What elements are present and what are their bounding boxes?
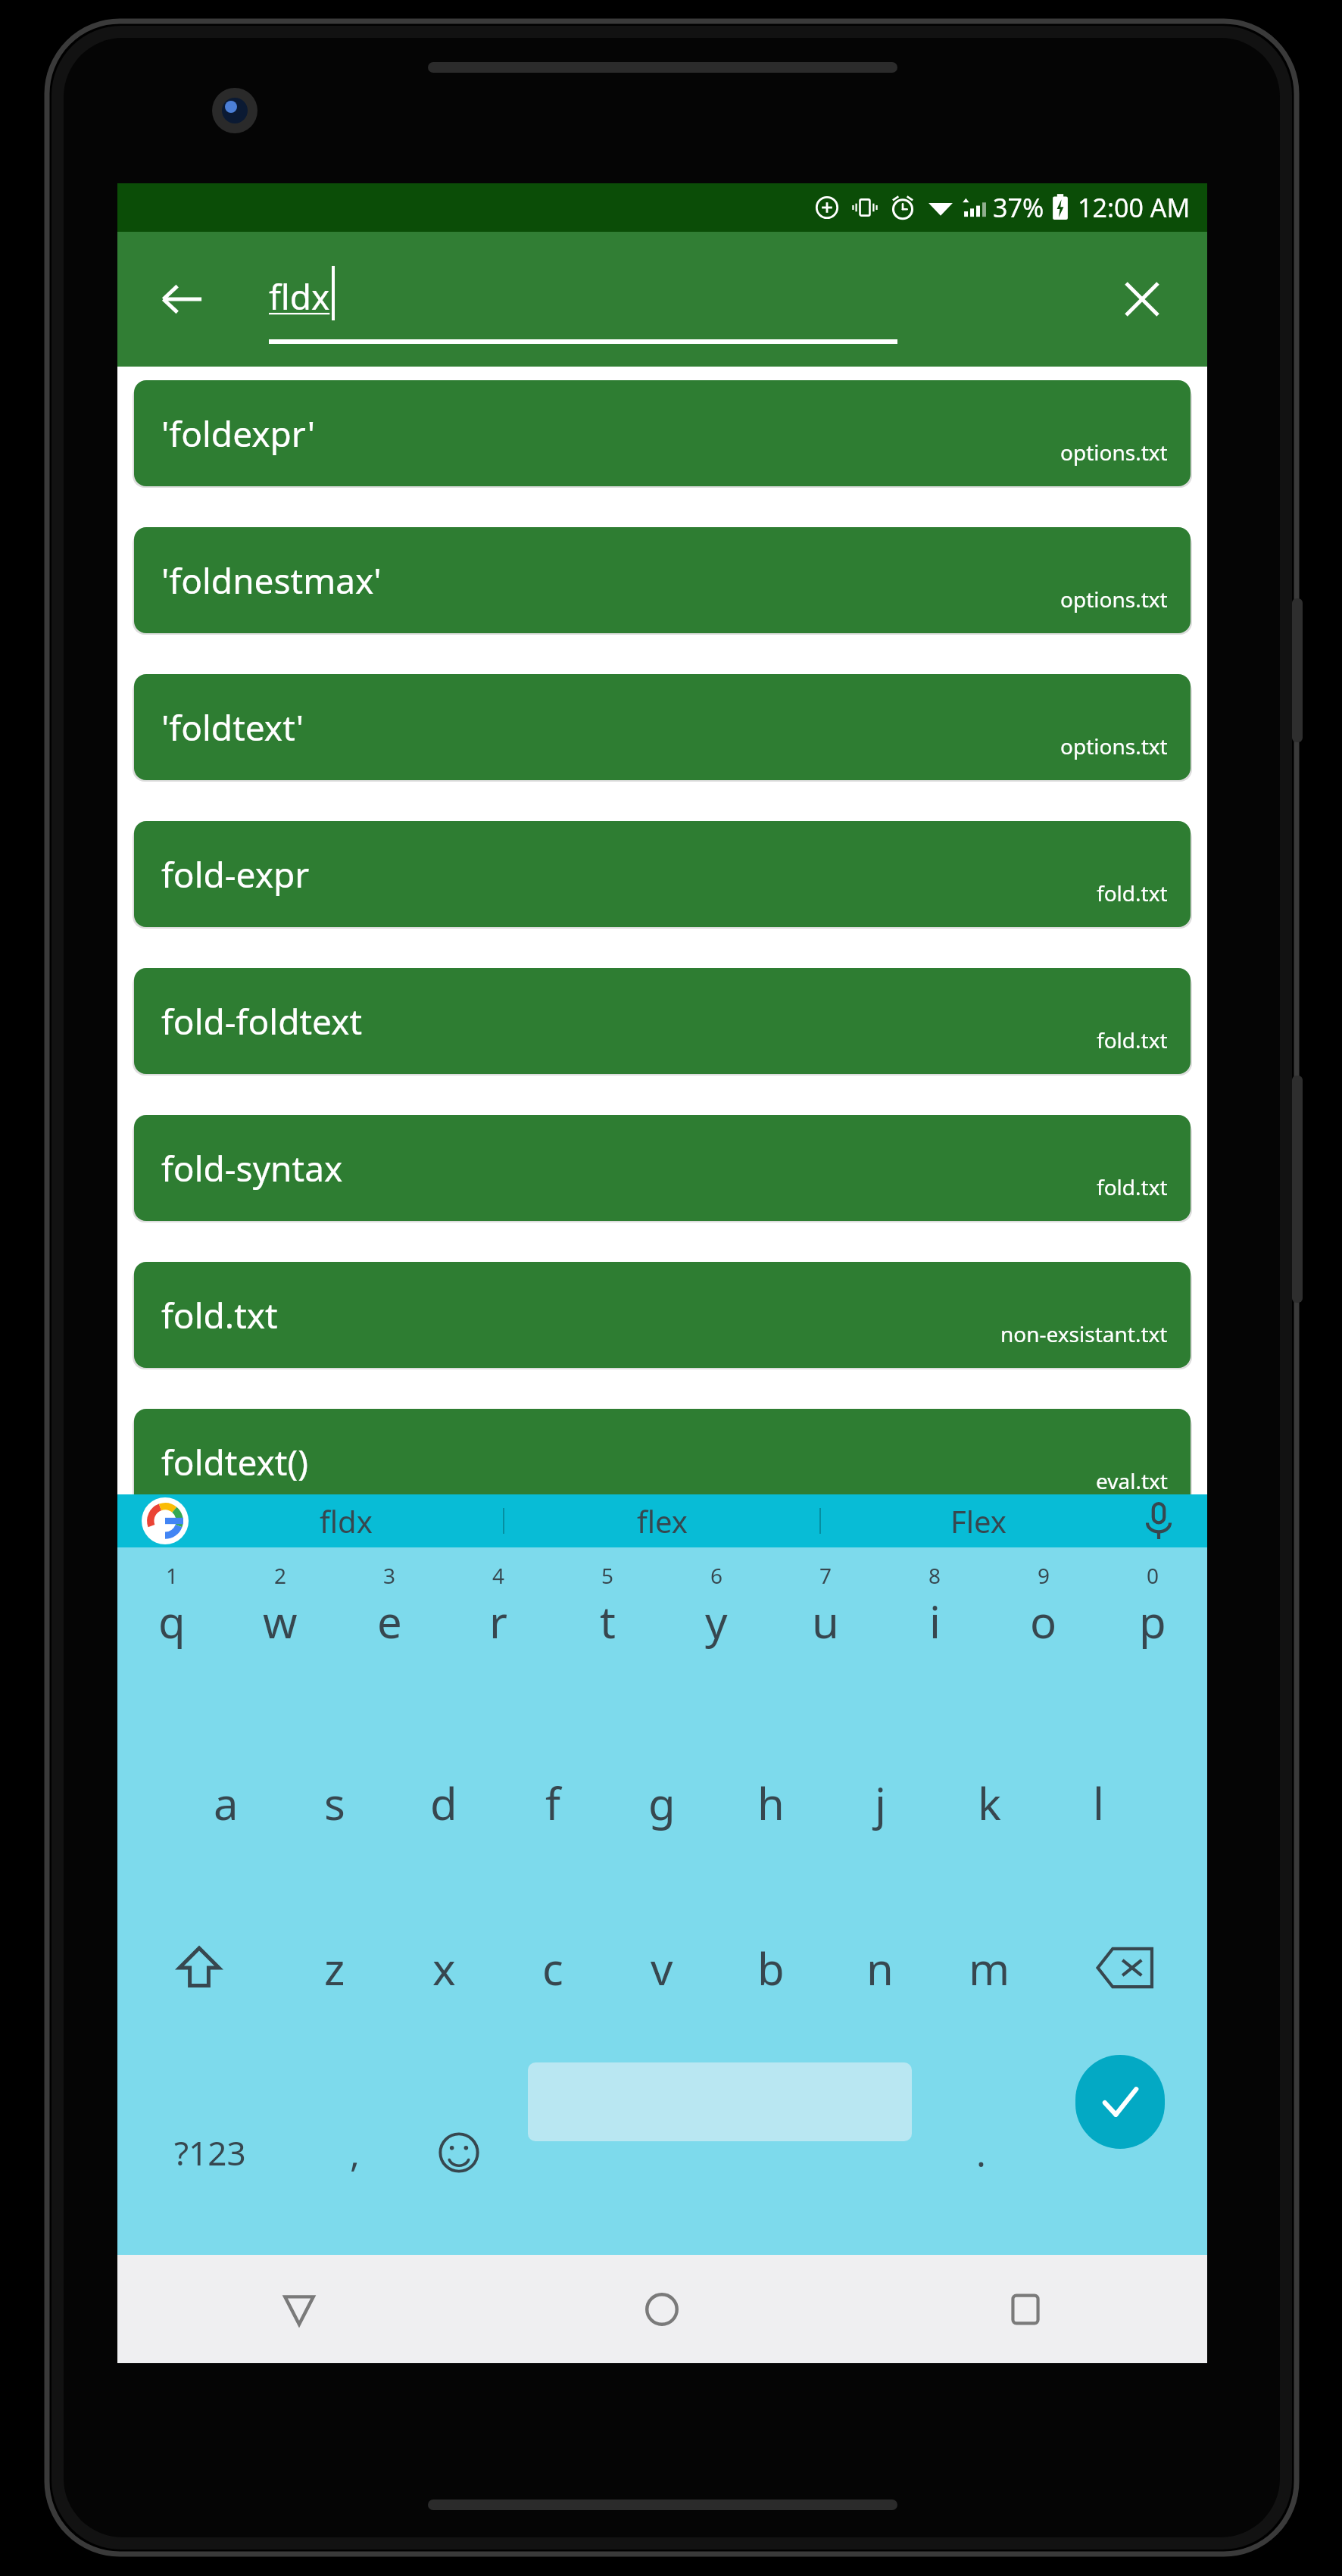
button[interactable]: Enter — [1033, 2050, 1207, 2255]
staticText: fold-foldtext — [161, 998, 363, 1045]
staticText: y — [705, 1591, 728, 1651]
staticText: f — [545, 1773, 560, 1833]
staticText: p — [1139, 1591, 1166, 1651]
staticText: o — [1030, 1591, 1057, 1651]
button[interactable]: Emoji — [407, 2050, 511, 2255]
button[interactable]: 3 — [335, 1547, 444, 1720]
button[interactable]: j — [825, 1720, 935, 1885]
button[interactable]: fold-expr — [134, 821, 1191, 927]
button[interactable]: fldx — [189, 1494, 503, 1547]
button[interactable]: 5 — [553, 1547, 662, 1720]
button[interactable]: Flex — [821, 1494, 1136, 1547]
button[interactable]: Back — [148, 265, 216, 333]
staticText: foldtext() — [161, 1438, 308, 1486]
staticText: h — [757, 1773, 785, 1833]
button[interactable]: 7 — [771, 1547, 880, 1720]
button[interactable]: fold-syntax — [134, 1115, 1191, 1221]
button[interactable]: f — [498, 1720, 607, 1885]
button[interactable]: Shift — [117, 1885, 280, 2050]
button[interactable]: v — [607, 1885, 716, 2050]
staticText: fold.txt — [1097, 879, 1168, 907]
button[interactable]: Google — [142, 1497, 189, 1544]
staticText: b — [757, 1938, 785, 1998]
staticText: 3 — [383, 1561, 396, 1590]
staticText: c — [542, 1938, 563, 1998]
staticText: fold.txt — [1097, 1172, 1168, 1201]
button[interactable]: foldtext() — [134, 1409, 1191, 1515]
staticText: 1 — [166, 1561, 179, 1590]
button[interactable]: n — [825, 1885, 935, 2050]
staticText: non-exsistant.txt — [1000, 1319, 1168, 1348]
staticText: 12:00 AM — [1078, 190, 1191, 225]
staticText: m — [969, 1938, 1010, 1998]
staticText: 'foldtext' — [161, 704, 304, 751]
button[interactable]: Space — [511, 2050, 928, 2255]
staticText: j — [875, 1773, 886, 1833]
button[interactable]: 9 — [989, 1547, 1098, 1720]
button[interactable]: , — [302, 2050, 407, 2255]
button[interactable]: s — [280, 1720, 389, 1885]
button[interactable]: fold.txt — [134, 1262, 1191, 1368]
staticText: e — [377, 1591, 402, 1651]
staticText: fold-syntax — [161, 1144, 343, 1192]
button[interactable]: flex — [504, 1494, 819, 1547]
button[interactable]: Recent apps — [844, 2255, 1207, 2363]
staticText: flex — [637, 1500, 688, 1541]
staticText: u — [812, 1591, 839, 1651]
button[interactable]: . — [928, 2050, 1033, 2255]
staticText: w — [263, 1591, 298, 1651]
staticText: x — [432, 1938, 456, 1998]
button[interactable]: a — [171, 1720, 280, 1885]
button[interactable]: Back — [117, 2255, 480, 2363]
button[interactable]: 0 — [1098, 1547, 1207, 1720]
button[interactable]: b — [716, 1885, 825, 2050]
button[interactable]: Voice input — [1136, 1498, 1181, 1544]
staticText: 0 — [1147, 1561, 1159, 1590]
button[interactable]: Clear search — [1107, 264, 1177, 334]
staticText: eval.txt — [1096, 1466, 1168, 1495]
button[interactable]: 8 — [880, 1547, 989, 1720]
staticText: 37% — [993, 190, 1044, 225]
button[interactable]: z — [280, 1885, 389, 2050]
staticText: options.txt — [1060, 585, 1168, 614]
staticText: Flex — [950, 1500, 1006, 1541]
staticText: g — [648, 1773, 676, 1833]
staticText: 2 — [274, 1561, 287, 1590]
button[interactable]: ?123 — [117, 2050, 302, 2255]
staticText: d — [430, 1773, 457, 1833]
staticText: , — [350, 2128, 360, 2178]
staticText: 9 — [1038, 1561, 1050, 1590]
button[interactable]: Backspace — [1044, 1885, 1207, 2050]
staticText: 8 — [928, 1561, 941, 1590]
button[interactable]: 'foldtext' — [134, 674, 1191, 780]
staticText: fldx — [320, 1500, 373, 1541]
button[interactable]: l — [1044, 1720, 1153, 1885]
staticText: s — [324, 1773, 345, 1833]
button[interactable]: Home — [480, 2255, 844, 2363]
staticText: 'foldnestmax' — [161, 557, 382, 604]
button[interactable]: 4 — [444, 1547, 553, 1720]
button[interactable]: 6 — [662, 1547, 771, 1720]
button[interactable]: x — [389, 1885, 498, 2050]
staticText: i — [929, 1591, 941, 1651]
button[interactable]: d — [389, 1720, 498, 1885]
button[interactable]: 'foldnestmax' — [134, 527, 1191, 633]
button[interactable]: h — [716, 1720, 825, 1885]
staticText: ?123 — [174, 2130, 246, 2175]
button[interactable]: 'foldexpr' — [134, 380, 1191, 486]
button[interactable]: k — [935, 1720, 1044, 1885]
staticText: t — [600, 1591, 616, 1651]
staticText: 'foldexpr' — [161, 410, 315, 457]
staticText: options.txt — [1060, 732, 1168, 760]
button[interactable]: fldx — [269, 232, 897, 367]
button[interactable]: m — [935, 1885, 1044, 2050]
staticText: fldx — [269, 273, 330, 320]
staticText: . — [976, 2128, 986, 2178]
staticText: r — [489, 1591, 507, 1651]
button[interactable]: 2 — [226, 1547, 335, 1720]
button[interactable]: g — [607, 1720, 716, 1885]
button[interactable]: fold-foldtext — [134, 968, 1191, 1074]
staticText: 4 — [492, 1561, 505, 1590]
button[interactable]: c — [498, 1885, 607, 2050]
button[interactable]: 1 — [117, 1547, 226, 1720]
